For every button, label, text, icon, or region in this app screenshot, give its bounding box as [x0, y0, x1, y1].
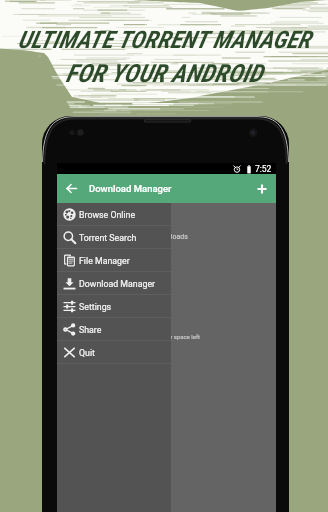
button[interactable]: Back — [57, 174, 86, 203]
staticText: Browse Online — [79, 210, 136, 220]
staticText: Download Manager — [79, 279, 156, 289]
staticText: Quit — [79, 348, 95, 358]
button[interactable]: File Manager — [57, 249, 171, 272]
staticText: FOR YOUR ANDROID — [0, 59, 328, 88]
staticText: Torrent Search — [79, 233, 137, 243]
staticText: File Manager — [79, 256, 130, 266]
staticText: 7:52 — [255, 164, 272, 174]
staticText: Share — [79, 325, 102, 335]
button[interactable]: Torrent Search — [57, 226, 171, 249]
staticText: No memory space left — [141, 333, 200, 340]
staticText: ULTIMATE TORRENT MANAGER — [0, 26, 328, 54]
staticText: Download Manager — [89, 183, 172, 194]
button[interactable]: Add — [247, 174, 276, 203]
button[interactable]: Download Manager — [57, 272, 171, 295]
button[interactable]: Share — [57, 318, 171, 341]
staticText: Settings — [79, 302, 112, 312]
button[interactable]: Browse Online — [57, 203, 171, 226]
staticText: Downloads — [153, 233, 188, 241]
button[interactable]: Quit — [57, 341, 171, 364]
button[interactable]: Settings — [57, 295, 171, 318]
